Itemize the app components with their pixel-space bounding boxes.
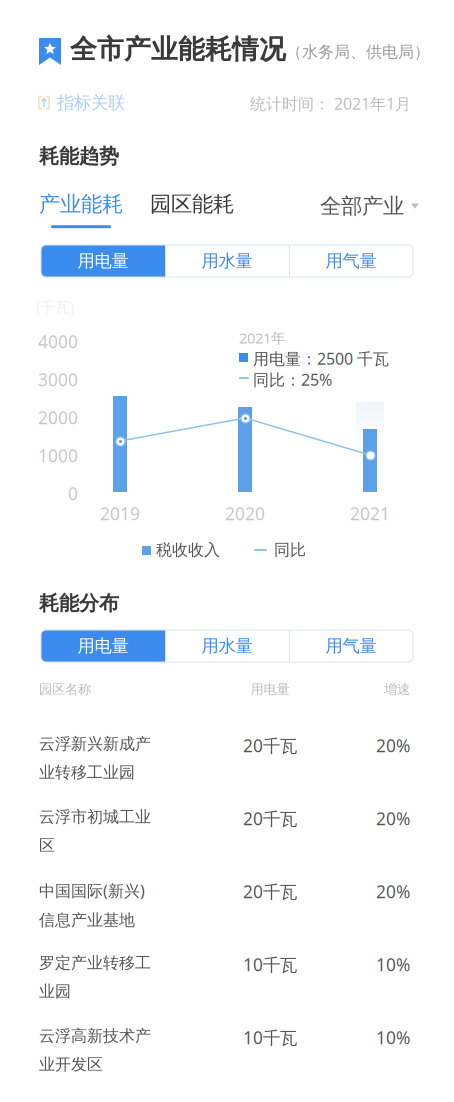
button[interactable]: 用电量	[41, 245, 165, 277]
staticText: （水务局、供电局）	[286, 42, 430, 62]
button[interactable]: 产业能耗	[39, 191, 123, 228]
staticText: 20%	[376, 734, 410, 757]
staticText: 园区名称	[39, 681, 91, 697]
staticText: (千瓦)	[36, 297, 74, 316]
button[interactable]: 全部产业	[320, 193, 419, 219]
staticText: 10%	[376, 953, 410, 976]
staticText: 园区能耗	[150, 191, 234, 217]
staticText: 10%	[376, 1026, 410, 1049]
staticText: 全部产业	[320, 193, 404, 219]
staticText: 2021年	[239, 328, 286, 347]
staticText: 用电量	[77, 635, 128, 657]
staticText: 2019	[100, 502, 140, 525]
button[interactable]: 用水量	[165, 630, 289, 662]
staticText: 指标关联	[57, 92, 125, 113]
button[interactable]: 用气量	[289, 630, 413, 662]
staticText: 同比	[274, 540, 306, 560]
staticText: 20%	[376, 880, 410, 903]
button[interactable]: 用电量	[41, 630, 165, 662]
staticText: 20千瓦	[243, 880, 297, 903]
staticText: 罗定产业转移工	[39, 953, 151, 973]
staticText: 全市产业能耗情况	[70, 33, 286, 66]
button[interactable]: 用水量	[165, 245, 289, 277]
button[interactable]: 指标关联	[38, 92, 125, 113]
button[interactable]: 罗定产业转移工	[0, 953, 454, 1009]
staticText: 20%	[376, 807, 410, 830]
staticText: 耗能趋势	[39, 144, 119, 169]
staticText: 云浮新兴新成产	[39, 734, 151, 754]
staticText: 10千瓦	[243, 953, 297, 976]
button[interactable]: 云浮市初城工业	[0, 807, 454, 863]
button[interactable]: 云浮新兴新成产	[0, 734, 454, 790]
staticText: 云浮市初城工业	[39, 807, 151, 827]
button[interactable]: 园区能耗	[150, 191, 234, 217]
staticText: 2021	[350, 502, 390, 525]
staticText: 3000	[38, 368, 78, 391]
staticText: 产业能耗	[39, 191, 123, 217]
staticText: 云浮高新技术产	[39, 1026, 151, 1046]
staticText: 用电量	[250, 681, 289, 697]
staticText: 统计时间： 2021年1月	[250, 93, 411, 114]
button[interactable]: 云浮高新技术产	[0, 1026, 454, 1082]
staticText: 业转移工业园	[39, 763, 135, 782]
staticText: 区	[39, 836, 55, 855]
staticText: 10千瓦	[243, 1026, 297, 1049]
staticText: 2020	[225, 502, 265, 525]
staticText: 1000	[38, 444, 78, 467]
staticText: 0	[68, 482, 78, 505]
staticText: 耗能分布	[39, 591, 119, 616]
staticText: 用电量	[77, 250, 128, 272]
staticText: 税收收入	[156, 540, 220, 560]
staticText: 4000	[38, 330, 78, 353]
staticText: 用电量：2500 千瓦	[253, 348, 389, 369]
staticText: 2000	[38, 406, 78, 429]
staticText: 20千瓦	[243, 807, 297, 830]
staticText: 20千瓦	[243, 734, 297, 757]
staticText: 信息产业基地	[39, 910, 135, 930]
staticText: 用水量	[201, 250, 252, 272]
staticText: 增速	[384, 681, 410, 697]
staticText: 业园	[39, 982, 71, 1001]
staticText: 同比：25%	[253, 369, 332, 390]
button[interactable]: 用气量	[289, 245, 413, 277]
staticText: 用气量	[325, 635, 376, 657]
staticText: 用水量	[201, 635, 252, 657]
button[interactable]: 中国国际(新兴)	[0, 880, 454, 936]
staticText: 中国国际(新兴)	[39, 880, 145, 901]
staticText: 用气量	[325, 250, 376, 272]
staticText: 业开发区	[39, 1055, 103, 1074]
